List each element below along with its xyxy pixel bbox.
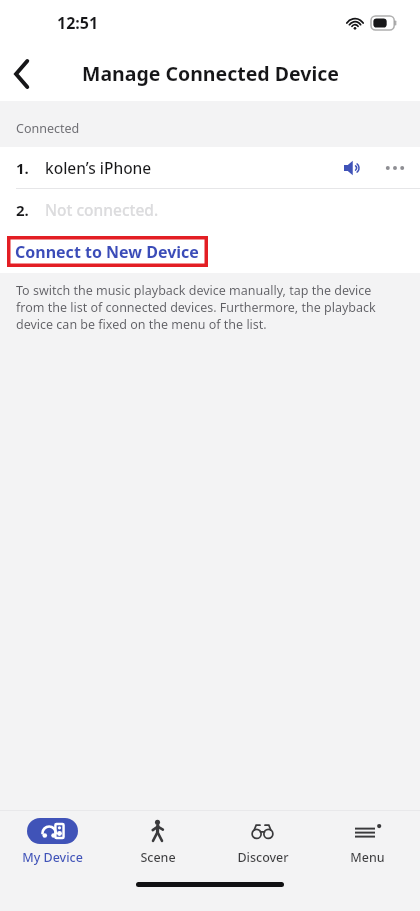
staticText: 1. [16, 158, 29, 178]
button[interactable]: Connect to New Device [7, 236, 208, 267]
button[interactable]: 1. [0, 147, 420, 188]
staticText: Manage Connected Device [82, 60, 339, 87]
button[interactable]: My Device [0, 811, 105, 873]
staticText: Scene [140, 849, 176, 866]
staticText: Discover [237, 849, 289, 866]
button[interactable]: Volume [336, 151, 370, 185]
staticText: To switch the music playback device manu… [16, 282, 400, 333]
staticText: kolen’s iPhone [45, 157, 152, 178]
button[interactable]: Menu [315, 811, 420, 873]
staticText: My Device [22, 849, 83, 866]
staticText: Connect to New Device [15, 241, 199, 263]
staticText: Not connected. [45, 199, 159, 220]
button[interactable]: More options [376, 149, 414, 187]
button[interactable]: Back [0, 52, 44, 96]
staticText: 12:51 [57, 12, 99, 34]
button[interactable]: 2. [0, 189, 420, 230]
button[interactable]: Discover [210, 811, 315, 873]
staticText: Menu [350, 849, 385, 866]
staticText: Connected [16, 120, 80, 137]
button[interactable]: Scene [105, 811, 210, 873]
staticText: 2. [16, 200, 29, 220]
